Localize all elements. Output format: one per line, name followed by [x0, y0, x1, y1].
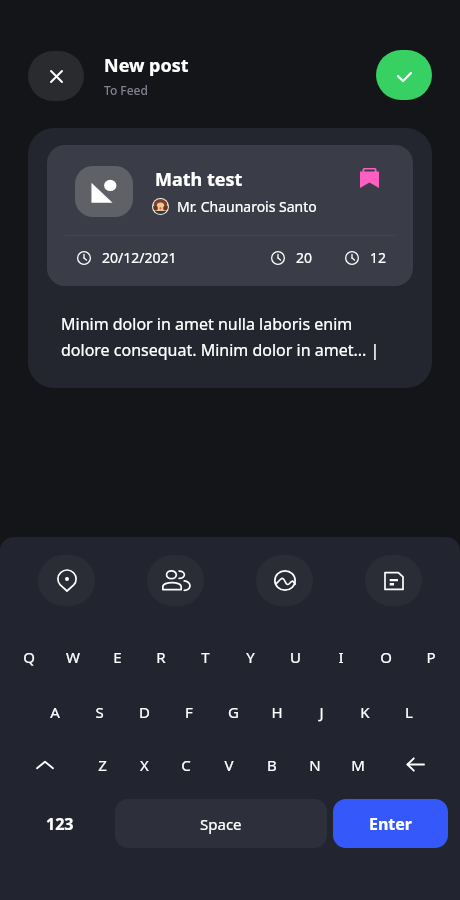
staticText: Mr. Chaunarois Santo: [177, 197, 317, 216]
button[interactable]: Close: [28, 51, 84, 101]
staticText: K: [360, 702, 370, 722]
staticText: L: [405, 702, 413, 722]
button[interactable]: K: [343, 685, 387, 738]
staticText: Y: [246, 647, 255, 667]
staticText: V: [224, 755, 234, 775]
button[interactable]: Space: [115, 799, 327, 848]
staticText: P: [426, 647, 436, 667]
staticText: T: [201, 647, 210, 667]
button[interactable]: Location: [38, 555, 95, 606]
button[interactable]: V: [207, 738, 250, 791]
staticText: 20/12/2021: [102, 248, 177, 267]
staticText: Math test: [155, 167, 243, 192]
staticText: U: [290, 647, 301, 667]
button[interactable]: M: [336, 738, 379, 791]
button[interactable]: X: [123, 738, 165, 791]
staticText: X: [140, 755, 149, 775]
button[interactable]: S: [77, 685, 122, 738]
button[interactable]: N: [293, 738, 336, 791]
button[interactable]: R: [139, 630, 183, 683]
button[interactable]: C: [165, 738, 207, 791]
staticText: M: [351, 755, 365, 775]
button[interactable]: F: [167, 685, 211, 738]
staticText: H: [271, 702, 283, 722]
button[interactable]: Document: [365, 555, 422, 606]
staticText: To Feed: [104, 82, 148, 98]
button[interactable]: P: [408, 630, 453, 683]
staticText: R: [156, 647, 166, 667]
button[interactable]: Q: [7, 630, 51, 683]
staticText: Enter: [369, 813, 413, 835]
staticText: E: [113, 647, 122, 667]
button[interactable]: I: [318, 630, 363, 683]
staticText: Minim dolor in amet nulla laboris enim d…: [61, 313, 398, 361]
staticText: N: [309, 755, 321, 775]
button[interactable]: E: [95, 630, 139, 683]
button[interactable]: People: [147, 555, 204, 606]
staticText: F: [185, 702, 193, 722]
staticText: 123: [46, 813, 74, 835]
button[interactable]: W: [51, 630, 95, 683]
button[interactable]: Photo: [256, 555, 313, 606]
staticText: A: [50, 702, 60, 722]
staticText: New post: [104, 53, 189, 78]
button[interactable]: 123: [20, 799, 100, 848]
staticText: D: [139, 702, 150, 722]
button[interactable]: Backspace: [379, 738, 451, 791]
staticText: G: [228, 702, 239, 722]
staticText: J: [319, 702, 324, 722]
staticText: O: [380, 647, 392, 667]
staticText: W: [66, 647, 80, 667]
button[interactable]: Z: [81, 738, 123, 791]
button[interactable]: Enter: [333, 799, 448, 848]
button[interactable]: O: [363, 630, 408, 683]
button[interactable]: L: [387, 685, 431, 738]
staticText: C: [181, 755, 191, 775]
staticText: Q: [23, 647, 35, 667]
button[interactable]: B: [250, 738, 293, 791]
button[interactable]: D: [122, 685, 167, 738]
staticText: 20: [296, 248, 313, 267]
button[interactable]: A: [32, 685, 77, 738]
staticText: B: [267, 755, 277, 775]
button[interactable]: J: [299, 685, 343, 738]
staticText: 12: [370, 248, 387, 267]
staticText: Space: [200, 814, 242, 834]
staticText: I: [338, 647, 344, 667]
button[interactable]: Post: [376, 50, 432, 100]
button[interactable]: U: [273, 630, 318, 683]
button[interactable]: T: [183, 630, 228, 683]
staticText: Z: [98, 755, 107, 775]
button[interactable]: Shift: [8, 738, 81, 791]
button[interactable]: Y: [228, 630, 273, 683]
button[interactable]: H: [255, 685, 299, 738]
staticText: S: [95, 702, 104, 722]
button[interactable]: G: [211, 685, 255, 738]
